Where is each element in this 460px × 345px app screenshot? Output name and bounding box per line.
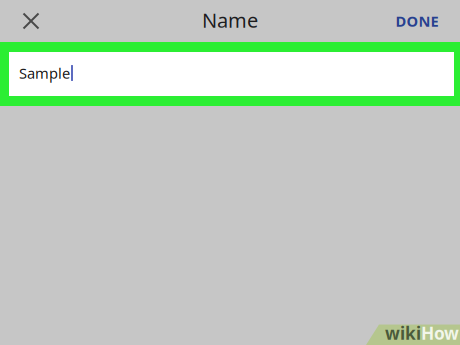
- staticText: Name: [202, 7, 258, 33]
- button[interactable]: DONE: [386, 0, 448, 42]
- staticText: DONE: [395, 11, 438, 31]
- staticText: Sample: [19, 63, 70, 83]
- button[interactable]: Close: [12, 0, 50, 42]
- staticText: wiki: [385, 321, 421, 344]
- staticText: How: [421, 321, 459, 344]
- button[interactable]: Sample: [9, 52, 454, 96]
